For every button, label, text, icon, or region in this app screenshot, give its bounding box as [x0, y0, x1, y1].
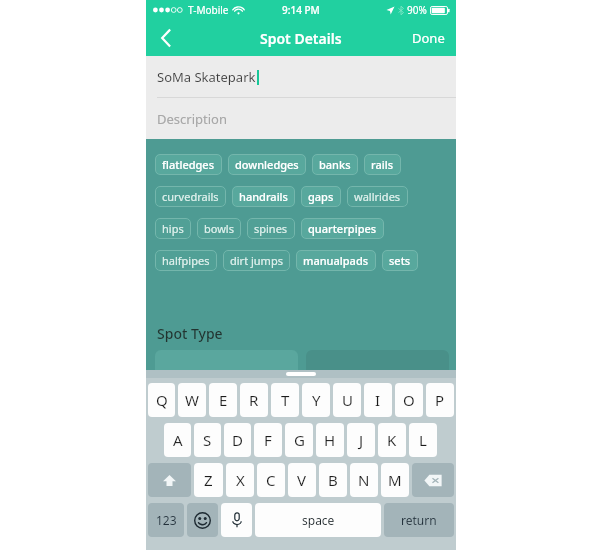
staticText: Y: [312, 390, 321, 410]
button[interactable]: N: [350, 463, 378, 497]
button[interactable]: W: [178, 383, 206, 417]
button[interactable]: A: [164, 423, 191, 457]
button[interactable]: rails: [364, 154, 401, 175]
staticText: dirt jumps: [230, 253, 283, 268]
button[interactable]: I: [364, 383, 392, 417]
button[interactable]: J: [347, 423, 375, 457]
button[interactable]: hips: [155, 218, 191, 239]
staticText: X: [236, 470, 245, 490]
staticText: hips: [162, 221, 184, 236]
button[interactable]: banks: [312, 154, 358, 175]
button[interactable]: curvedrails: [155, 186, 226, 207]
staticText: U: [342, 390, 353, 410]
button[interactable]: handrails: [232, 186, 295, 207]
button[interactable]: return: [384, 503, 454, 537]
staticText: O: [403, 390, 415, 410]
button[interactable]: Done: [401, 21, 456, 55]
staticText: P: [435, 390, 445, 410]
staticText: S: [203, 430, 212, 450]
button[interactable]: L: [409, 423, 437, 457]
button[interactable]: V: [288, 463, 316, 497]
staticText: J: [359, 430, 364, 450]
button[interactable]: Dictate: [221, 503, 252, 537]
button[interactable]: halfpipes: [155, 250, 217, 271]
button[interactable]: manualpads: [296, 250, 376, 271]
button[interactable]: X: [226, 463, 254, 497]
staticText: curvedrails: [162, 189, 219, 204]
staticText: R: [249, 390, 259, 410]
staticText: 9:14 PM: [282, 3, 320, 17]
staticText: F: [264, 430, 272, 450]
staticText: W: [185, 390, 199, 410]
staticText: 123: [156, 512, 177, 528]
button[interactable]: O: [395, 383, 423, 417]
button[interactable]: K: [378, 423, 406, 457]
button[interactable]: Emoji: [187, 503, 218, 537]
button[interactable]: T: [271, 383, 299, 417]
button[interactable]: sets: [382, 250, 418, 271]
staticText: halfpipes: [162, 253, 210, 268]
button[interactable]: Backspace: [412, 463, 454, 497]
staticText: gaps: [308, 189, 334, 204]
button[interactable]: gaps: [301, 186, 341, 207]
staticText: rails: [371, 157, 394, 172]
button[interactable]: flatledges: [155, 154, 222, 175]
button[interactable]: P: [426, 383, 454, 417]
button[interactable]: spines: [247, 218, 295, 239]
button[interactable]: Back: [146, 20, 186, 56]
staticText: G: [294, 430, 305, 450]
button[interactable]: dirt jumps: [223, 250, 290, 271]
button[interactable]: Shift: [148, 463, 191, 497]
staticText: SoMa Skatepark: [157, 68, 256, 86]
button[interactable]: 123: [148, 503, 184, 537]
button[interactable]: H: [316, 423, 344, 457]
staticText: D: [232, 430, 243, 450]
staticText: space: [302, 512, 335, 528]
button[interactable]: G: [285, 423, 313, 457]
button[interactable]: M: [381, 463, 409, 497]
staticText: return: [401, 512, 437, 528]
button[interactable]: D: [224, 423, 251, 457]
button[interactable]: F: [254, 423, 282, 457]
button[interactable]: bowls: [197, 218, 241, 239]
staticText: downledges: [235, 157, 299, 172]
staticText: I: [375, 390, 381, 410]
button[interactable]: S: [194, 423, 221, 457]
button[interactable]: Q: [148, 383, 175, 417]
staticText: manualpads: [303, 253, 369, 268]
button[interactable]: Y: [302, 383, 330, 417]
button[interactable]: B: [319, 463, 347, 497]
staticText: banks: [319, 157, 351, 172]
button[interactable]: E: [209, 383, 237, 417]
staticText: L: [419, 430, 427, 450]
staticText: Z: [204, 470, 213, 490]
staticText: bowls: [204, 221, 234, 236]
staticText: T: [281, 390, 290, 410]
button[interactable]: wallrides: [347, 186, 408, 207]
staticText: B: [328, 470, 338, 490]
staticText: Description: [157, 110, 227, 128]
staticText: M: [388, 470, 402, 490]
staticText: H: [324, 430, 336, 450]
button[interactable]: quarterpipes: [301, 218, 384, 239]
button[interactable]: Z: [194, 463, 223, 497]
button[interactable]: U: [333, 383, 361, 417]
staticText: Spot Details: [260, 29, 342, 48]
button[interactable]: space: [255, 503, 381, 537]
staticText: E: [219, 390, 228, 410]
button[interactable]: [155, 350, 298, 380]
button[interactable]: R: [240, 383, 268, 417]
button[interactable]: downledges: [228, 154, 306, 175]
staticText: K: [387, 430, 397, 450]
button[interactable]: [306, 350, 449, 380]
staticText: Done: [412, 29, 445, 47]
staticText: spines: [254, 221, 288, 236]
staticText: wallrides: [354, 189, 401, 204]
staticText: N: [358, 470, 370, 490]
staticText: 90%: [407, 3, 427, 17]
button[interactable]: C: [257, 463, 285, 497]
staticText: sets: [389, 253, 411, 268]
staticText: Q: [156, 390, 168, 410]
staticText: Spot Type: [157, 324, 223, 343]
staticText: C: [266, 470, 276, 490]
